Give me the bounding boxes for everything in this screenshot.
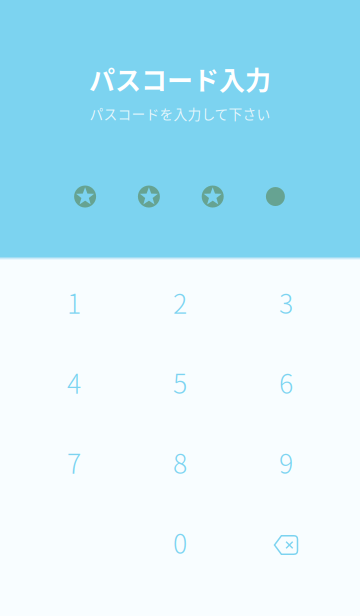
staticText: 7 (67, 443, 81, 481)
button[interactable]: 9 (233, 422, 339, 502)
button[interactable]: 1 (21, 262, 127, 342)
staticText: 1 (67, 283, 81, 321)
button[interactable]: 3 (233, 262, 339, 342)
button[interactable]: 0 (127, 502, 233, 582)
button[interactable]: 6 (233, 342, 339, 422)
staticText: 9 (279, 443, 293, 481)
button[interactable]: 5 (127, 342, 233, 422)
staticText: 2 (173, 283, 187, 321)
button[interactable]: Delete (233, 502, 339, 582)
button[interactable]: 2 (127, 262, 233, 342)
staticText: 8 (173, 443, 187, 481)
staticText: 5 (173, 363, 187, 401)
button[interactable]: 8 (127, 422, 233, 502)
staticText: 0 (173, 523, 187, 561)
button[interactable]: 4 (21, 342, 127, 422)
staticText: パスコードを入力して下さい (89, 104, 270, 123)
staticText: 6 (279, 363, 293, 401)
staticText: 4 (67, 363, 81, 401)
staticText: パスコード入力 (89, 60, 271, 98)
button[interactable]: 7 (21, 422, 127, 502)
staticText: 3 (279, 283, 293, 321)
